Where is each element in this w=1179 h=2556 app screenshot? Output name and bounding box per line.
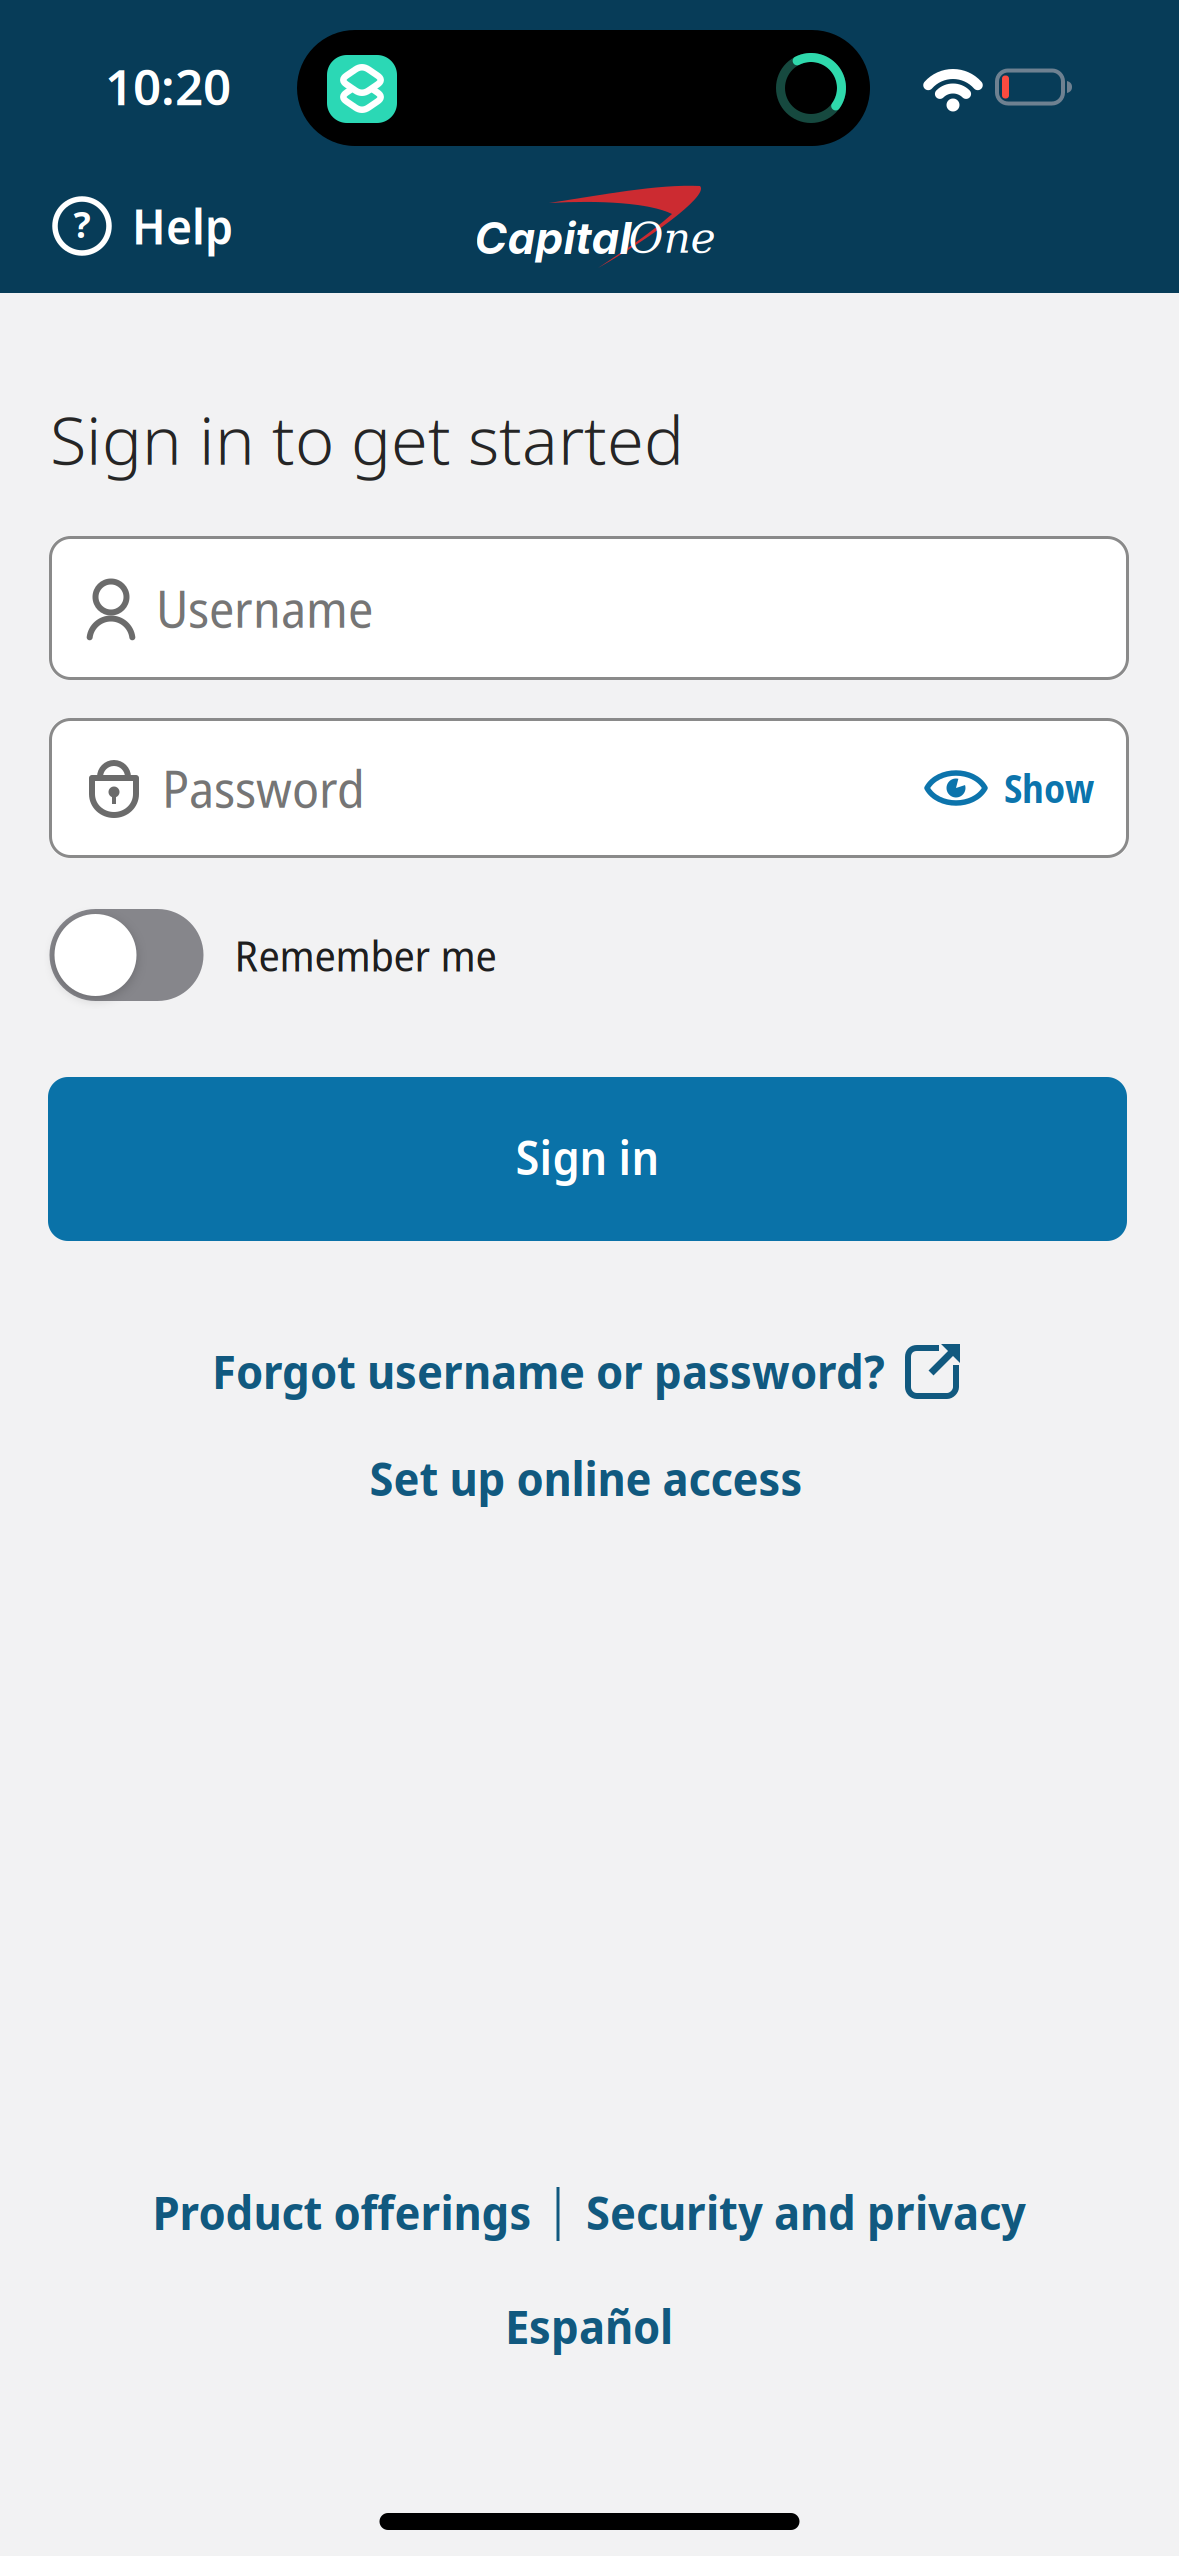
staticText: Sign in to get started: [50, 394, 684, 484]
staticText: Product offerings: [152, 2180, 531, 2244]
staticText: 10:20: [105, 52, 231, 120]
staticText: Help: [132, 193, 233, 259]
staticText: Security and privacy: [586, 2180, 1026, 2244]
staticText: Remember me: [234, 926, 496, 984]
staticText: Español: [505, 2294, 673, 2358]
staticText: Capital: [474, 211, 631, 265]
button[interactable]: Forgot username or password?: [212, 1339, 961, 1403]
staticText: Username: [156, 573, 373, 642]
button[interactable]: Remember me: [49, 909, 496, 1001]
button[interactable]: Password: [49, 718, 1129, 858]
button[interactable]: Set up online access: [369, 1446, 802, 1510]
staticText: Set up online access: [369, 1446, 802, 1510]
staticText: Show: [1004, 762, 1094, 814]
staticText: Password: [162, 753, 365, 822]
button[interactable]: Security and privacy: [586, 2180, 1026, 2244]
button[interactable]: Show: [925, 762, 1094, 814]
button[interactable]: Sign in: [48, 1077, 1127, 1241]
button[interactable]: ?: [52, 193, 233, 259]
staticText: Forgot username or password?: [212, 1339, 885, 1403]
button[interactable]: Product offerings: [152, 2180, 531, 2244]
staticText: One: [628, 213, 715, 263]
staticText: Sign in: [515, 1125, 659, 1189]
button[interactable]: Español: [505, 2294, 673, 2358]
button[interactable]: Username: [49, 536, 1129, 680]
staticText: ?: [73, 199, 90, 248]
